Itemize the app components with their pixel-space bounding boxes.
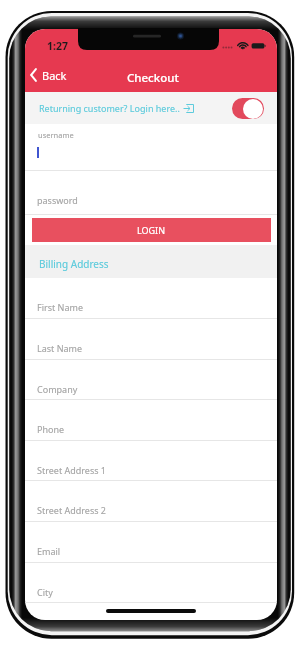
button[interactable]: Returning customer login toggle: [232, 98, 264, 119]
staticText: Company: [37, 383, 78, 395]
staticText: 1:27: [47, 39, 68, 53]
staticText: LOGIN: [137, 224, 166, 236]
button[interactable]: password: [25, 171, 277, 215]
button[interactable]: username: [25, 124, 277, 171]
button[interactable]: Back: [28, 66, 69, 84]
staticText: username: [38, 130, 74, 140]
button[interactable]: Email: [25, 522, 277, 563]
staticText: Email: [37, 545, 61, 557]
button[interactable]: Returning customer? Login here..: [35, 98, 198, 118]
staticText: First Name: [37, 301, 83, 313]
staticText: Checkout: [127, 70, 179, 86]
button[interactable]: Billing Address: [25, 245, 277, 278]
button[interactable]: LOGIN: [32, 218, 271, 242]
button[interactable]: Last Name: [25, 319, 277, 360]
button[interactable]: Phone: [25, 400, 277, 441]
staticText: Street Address 2: [37, 504, 107, 516]
staticText: City: [37, 586, 53, 598]
button[interactable]: Company: [25, 360, 277, 400]
staticText: Phone: [37, 423, 65, 435]
button[interactable]: City: [25, 563, 277, 603]
staticText: password: [37, 194, 78, 206]
staticText: Billing Address: [39, 257, 109, 271]
staticText: Back: [42, 68, 67, 83]
button[interactable]: Street Address 2: [25, 481, 277, 522]
button[interactable]: Street Address 1: [25, 441, 277, 481]
staticText: Last Name: [37, 342, 83, 354]
button[interactable]: First Name: [25, 278, 277, 319]
staticText: Returning customer? Login here..: [39, 102, 180, 114]
staticText: Street Address 1: [37, 464, 107, 476]
